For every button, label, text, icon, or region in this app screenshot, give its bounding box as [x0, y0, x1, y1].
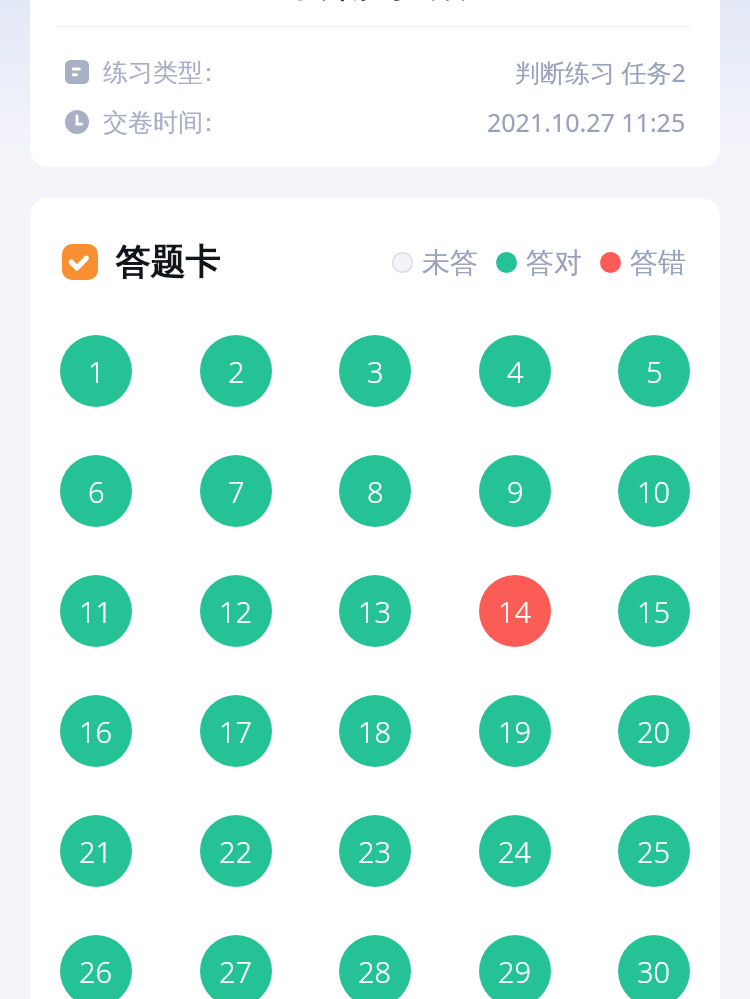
- staticText: 29: [498, 952, 532, 991]
- button[interactable]: 10: [618, 455, 690, 527]
- staticText: 10: [637, 472, 671, 511]
- button[interactable]: 答题卡: [62, 244, 98, 280]
- staticText: 5: [646, 352, 663, 391]
- button[interactable]: 15: [618, 575, 690, 647]
- button[interactable]: 7: [200, 455, 272, 527]
- button[interactable]: 17: [200, 695, 272, 767]
- button[interactable]: 23: [339, 815, 411, 887]
- staticText: 23: [358, 832, 392, 871]
- staticText: 20: [637, 712, 671, 751]
- staticText: 8: [367, 472, 384, 511]
- staticText: 17: [219, 712, 253, 751]
- button[interactable]: 26: [60, 935, 132, 999]
- staticText: 答题卡: [115, 240, 220, 284]
- button[interactable]: 5: [618, 335, 690, 407]
- button[interactable]: 29: [479, 935, 551, 999]
- button[interactable]: 1: [60, 335, 132, 407]
- button[interactable]: 30: [618, 935, 690, 999]
- staticText: 21: [79, 832, 113, 871]
- button[interactable]: 3: [339, 335, 411, 407]
- staticText: 7: [228, 472, 245, 511]
- button[interactable]: 12: [200, 575, 272, 647]
- staticText: 交卷时间: [103, 107, 203, 138]
- button[interactable]: 28: [339, 935, 411, 999]
- button[interactable]: 27: [200, 935, 272, 999]
- staticText: 15: [637, 592, 671, 631]
- staticText: 26: [79, 952, 113, 991]
- button[interactable]: 2: [200, 335, 272, 407]
- button[interactable]: 14: [479, 575, 551, 647]
- staticText: 14: [498, 592, 532, 631]
- staticText: 4: [507, 352, 524, 391]
- staticText: 16: [79, 712, 113, 751]
- button[interactable]: 答对: [496, 245, 582, 280]
- button[interactable]: 未答: [392, 245, 478, 280]
- staticText: 11: [79, 592, 113, 631]
- staticText: 3: [367, 352, 384, 391]
- staticText: 12: [219, 592, 253, 631]
- staticText: 6: [88, 472, 105, 511]
- staticText: 28: [358, 952, 392, 991]
- staticText: 24: [498, 832, 532, 871]
- staticText: ：: [196, 107, 221, 138]
- staticText: 30: [637, 952, 671, 991]
- button[interactable]: 4: [479, 335, 551, 407]
- staticText: 19: [498, 712, 532, 751]
- button[interactable]: 21: [60, 815, 132, 887]
- button[interactable]: 18: [339, 695, 411, 767]
- button[interactable]: 8: [339, 455, 411, 527]
- staticText: 9: [507, 472, 524, 511]
- button[interactable]: 13: [339, 575, 411, 647]
- staticText: 13: [358, 592, 392, 631]
- button[interactable]: 19: [479, 695, 551, 767]
- button[interactable]: 9: [479, 455, 551, 527]
- staticText: 未答: [422, 245, 478, 280]
- staticText: 答错: [630, 245, 686, 280]
- button[interactable]: 答错: [600, 245, 686, 280]
- staticText: 1: [88, 352, 105, 391]
- button[interactable]: 20: [618, 695, 690, 767]
- button[interactable]: 25: [618, 815, 690, 887]
- button[interactable]: 16: [60, 695, 132, 767]
- staticText: 25: [637, 832, 671, 871]
- staticText: 18: [358, 712, 392, 751]
- staticText: 22: [219, 832, 253, 871]
- button[interactable]: 22: [200, 815, 272, 887]
- staticText: 练习类型: [103, 57, 203, 88]
- staticText: 2: [228, 352, 245, 391]
- staticText: 答对: [526, 245, 582, 280]
- button[interactable]: 6: [60, 455, 132, 527]
- button[interactable]: 11: [60, 575, 132, 647]
- button[interactable]: 24: [479, 815, 551, 887]
- staticText: ：: [196, 57, 221, 88]
- staticText: 判断练习 任务2: [515, 55, 686, 89]
- staticText: 本次练习成绩: [285, 0, 465, 6]
- staticText: 27: [219, 952, 253, 991]
- staticText: 2021.10.27 11:25: [487, 105, 686, 139]
